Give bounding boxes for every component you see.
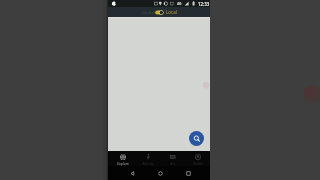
staticText: Local [166, 9, 177, 15]
button[interactable]: Back [127, 168, 137, 178]
button[interactable]: Explore [110, 151, 135, 166]
button[interactable]: Home [155, 168, 165, 178]
staticText: Profile [193, 161, 203, 165]
staticText: Activity [142, 161, 154, 165]
button[interactable]: Activity [135, 151, 160, 166]
button[interactable]: Art [160, 151, 185, 166]
button[interactable]: Recent apps [183, 168, 193, 178]
button[interactable]: Search [189, 131, 204, 146]
staticText: 12:33 [198, 1, 210, 7]
staticText: Art [170, 161, 175, 165]
staticText: Global [142, 9, 155, 15]
staticText: 4G [177, 1, 182, 6]
staticText: Explore [117, 161, 129, 165]
button[interactable]: Toggle global or local [154, 8, 165, 16]
button[interactable]: Profile [185, 151, 210, 166]
